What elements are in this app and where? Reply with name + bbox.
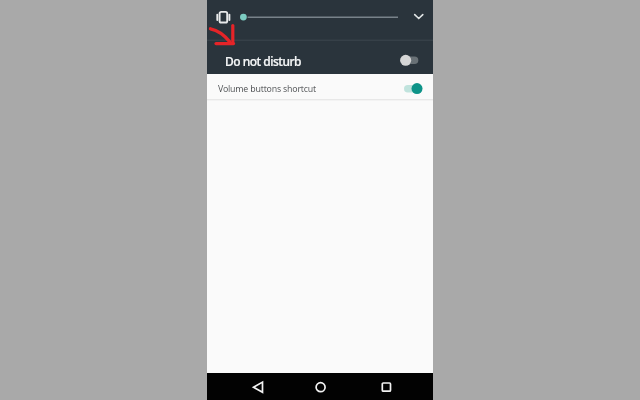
button[interactable]: [367, 376, 397, 398]
button[interactable]: [243, 376, 273, 398]
button[interactable]: [207, 0, 433, 40]
button[interactable]: Volume buttons shortcut: [207, 78, 433, 100]
staticText: Do not disturb: [225, 53, 301, 69]
button[interactable]: [305, 376, 335, 398]
button[interactable]: Do not disturb: [207, 45, 433, 76]
staticText: Volume buttons shortcut: [218, 83, 317, 95]
